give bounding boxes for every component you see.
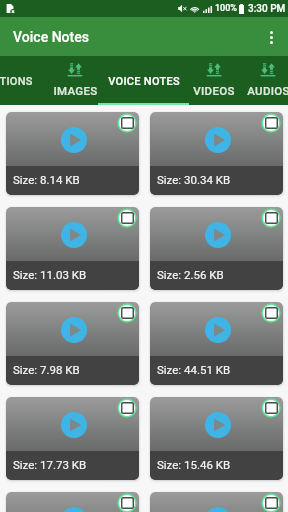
- button[interactable]: OPTIONS: [0, 56, 38, 105]
- button[interactable]: Play: [205, 222, 231, 248]
- button[interactable]: Select item: [261, 208, 281, 228]
- button[interactable]: Select item: [261, 303, 281, 323]
- button[interactable]: Play: [6, 112, 139, 195]
- staticText: Size: 7.98 KB: [13, 363, 80, 376]
- staticText: 100%: [215, 3, 237, 14]
- button[interactable]: Play: [61, 127, 87, 153]
- staticText: IMAGES: [53, 84, 98, 97]
- button[interactable]: Play: [205, 412, 231, 438]
- button[interactable]: Select item: [261, 493, 281, 512]
- button[interactable]: Play: [150, 112, 283, 195]
- staticText: Size: 11.03 KB: [13, 268, 87, 281]
- button[interactable]: Play: [6, 397, 139, 480]
- staticText: VIDEOS: [193, 84, 235, 97]
- staticText: Size: 2.56 KB: [157, 268, 224, 281]
- button[interactable]: Play: [6, 492, 139, 512]
- button[interactable]: VOICE NOTES: [98, 56, 189, 105]
- button[interactable]: Play: [205, 507, 231, 512]
- button[interactable]: IMAGES: [45, 56, 105, 105]
- button[interactable]: VIDEOS: [189, 56, 239, 105]
- button[interactable]: Play: [150, 302, 283, 385]
- staticText: Size: 8.14 KB: [13, 173, 80, 186]
- button[interactable]: Play: [61, 317, 87, 343]
- button[interactable]: Play: [150, 492, 283, 512]
- staticText: Size: 30.34 KB: [157, 173, 231, 186]
- staticText: 3:30 PM: [248, 3, 286, 15]
- button[interactable]: Play: [6, 207, 139, 290]
- staticText: AUDIOS: [247, 84, 288, 97]
- staticText: VOICE NOTES: [108, 75, 180, 88]
- button[interactable]: Play: [150, 207, 283, 290]
- button[interactable]: More options: [254, 20, 288, 54]
- staticText: Size: 17.73 KB: [13, 458, 87, 471]
- button[interactable]: Play: [205, 317, 231, 343]
- button[interactable]: Select item: [261, 113, 281, 133]
- button[interactable]: AUDIOS: [243, 56, 288, 105]
- button[interactable]: Select item: [117, 208, 137, 228]
- button[interactable]: Play: [6, 302, 139, 385]
- button[interactable]: Play: [150, 397, 283, 480]
- button[interactable]: Play: [205, 127, 231, 153]
- button[interactable]: Select item: [261, 398, 281, 418]
- button[interactable]: Select item: [117, 493, 137, 512]
- staticText: Voice Notes: [13, 29, 89, 45]
- button[interactable]: Play: [61, 412, 87, 438]
- button[interactable]: Play: [61, 507, 87, 512]
- button[interactable]: Play: [61, 222, 87, 248]
- staticText: Size: 44.51 KB: [157, 363, 231, 376]
- button[interactable]: Select item: [117, 398, 137, 418]
- staticText: Size: 15.46 KB: [157, 458, 231, 471]
- button[interactable]: Select item: [117, 113, 137, 133]
- staticText: OPTIONS: [0, 75, 33, 88]
- button[interactable]: Select item: [117, 303, 137, 323]
